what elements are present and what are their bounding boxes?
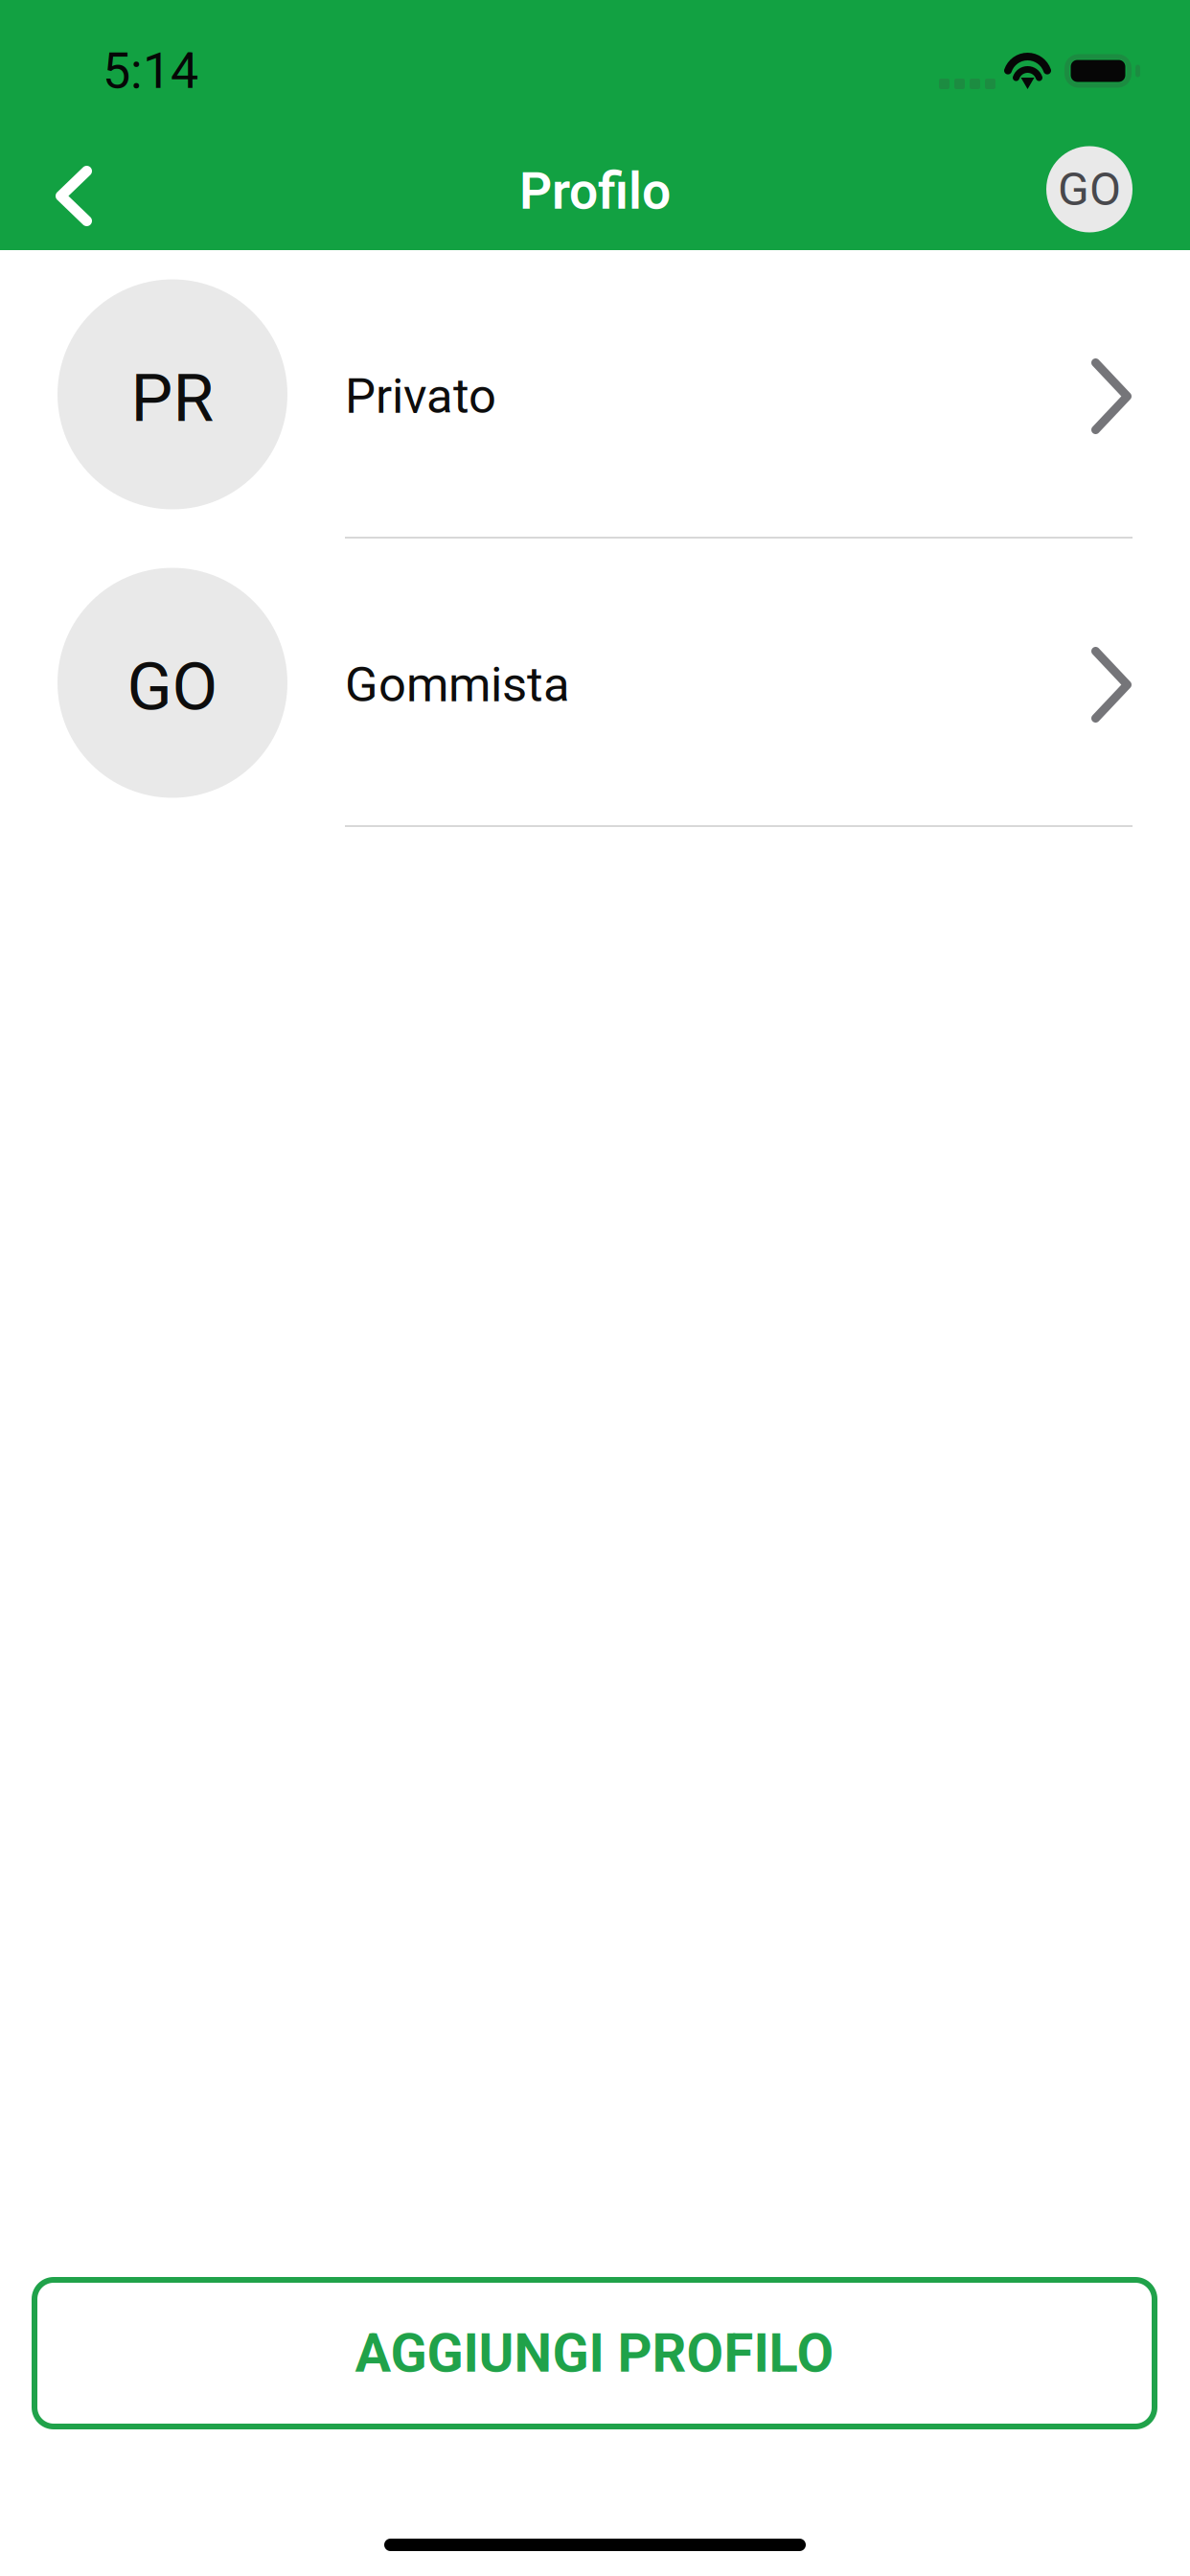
staticText: GO	[127, 648, 218, 726]
staticText: PR	[131, 359, 214, 437]
button[interactable]: PR	[0, 250, 1190, 539]
staticText: GO	[1058, 162, 1121, 216]
staticText: 5:14	[103, 42, 198, 100]
staticText: Profilo	[519, 161, 671, 221]
staticText: AGGIUNGI PROFILO	[355, 2322, 834, 2385]
button[interactable]: Current profile, GO	[1018, 127, 1190, 250]
staticText: Privato	[345, 368, 496, 425]
button[interactable]: GO	[0, 539, 1190, 827]
staticText: Gommista	[345, 656, 570, 713]
button[interactable]: Back	[0, 126, 128, 250]
button[interactable]: AGGIUNGI PROFILO	[0, 2277, 1190, 2429]
